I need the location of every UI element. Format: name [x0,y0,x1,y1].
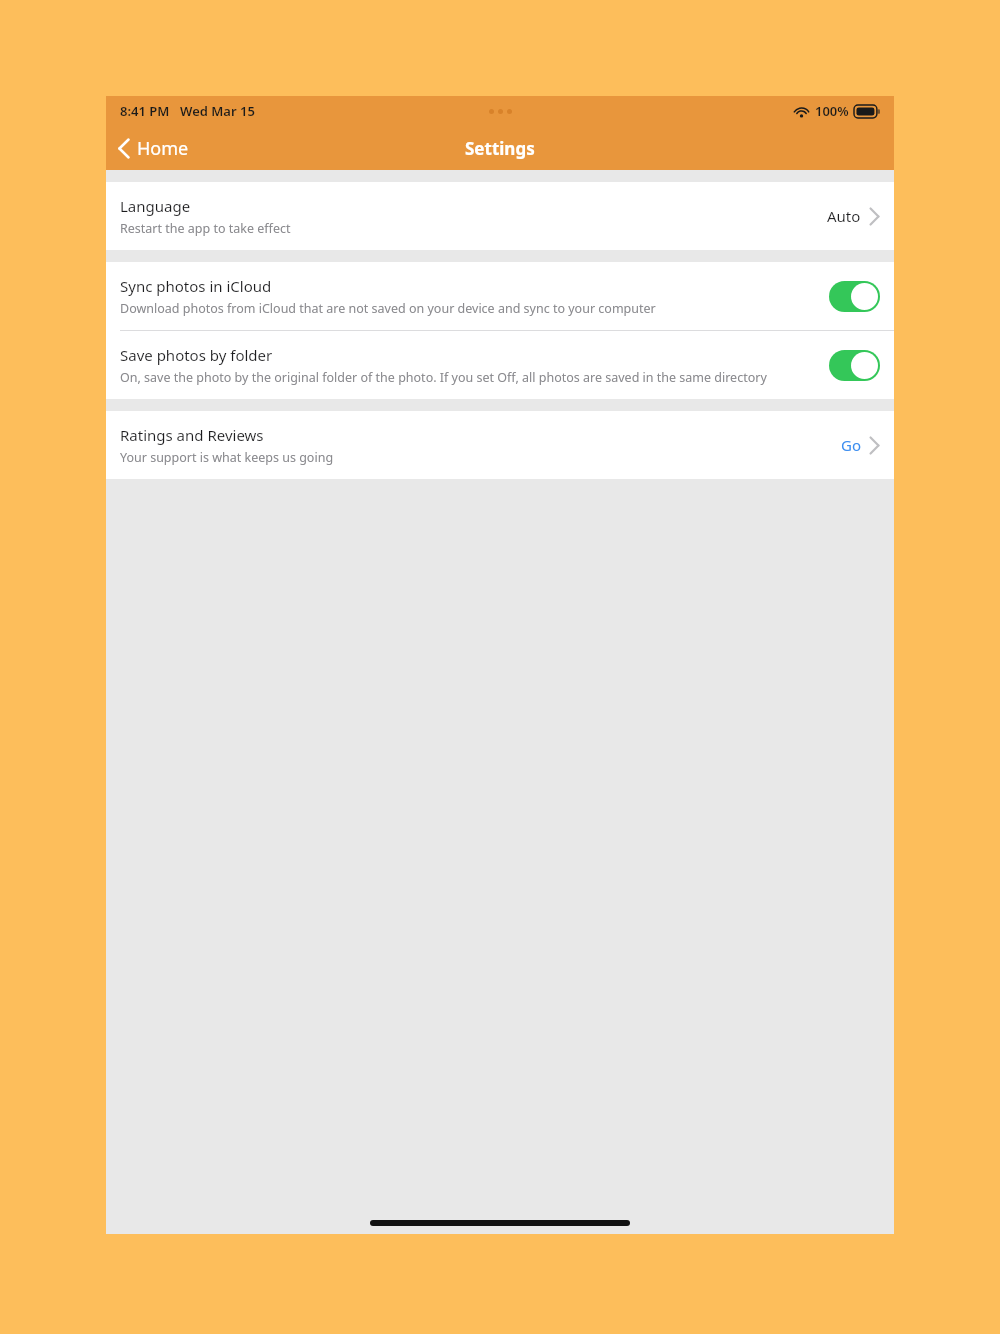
staticText: 8:41 PM [120,102,170,120]
staticText: Ratings and Reviews [120,425,264,445]
button[interactable]: Ratings and Reviews [106,411,894,479]
staticText: Your support is what keeps us going [120,449,334,466]
staticText: Wed Mar 15 [180,102,255,120]
staticText: Settings [465,137,535,160]
button[interactable]: Save photos by folder [106,331,894,399]
staticText: Save photos by folder [120,345,273,365]
button[interactable]: Toggle on [829,350,880,381]
button[interactable]: Sync photos in iCloud [106,262,894,330]
button[interactable]: Toggle on [829,281,880,312]
staticText: Language [120,196,191,216]
staticText: Restart the app to take effect [120,220,291,237]
staticText: Go [841,435,861,455]
staticText: On, save the photo by the original folde… [120,369,767,386]
staticText: Sync photos in iCloud [120,276,272,296]
other: Open [869,436,880,455]
button[interactable]: Home [106,126,201,170]
staticText: Download photos from iCloud that are not… [120,300,656,317]
staticText: 100% [815,102,849,120]
button[interactable]: Language [106,182,894,250]
staticText: Home [137,136,189,161]
staticText: Auto [827,206,861,226]
other: Open [869,207,880,226]
